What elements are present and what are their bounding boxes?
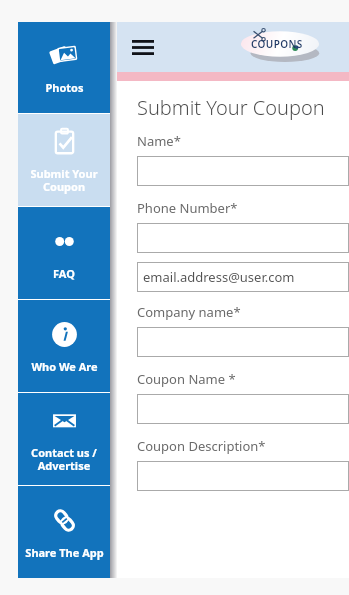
staticText: Photos (45, 80, 84, 95)
button[interactable]: Contact us / Advertise (18, 393, 110, 485)
staticText: Phone Number* (137, 199, 238, 217)
staticText: Coupon Description* (137, 437, 266, 455)
button[interactable] (137, 156, 349, 186)
staticText: Coupon Name * (137, 370, 236, 388)
button[interactable]: Submit Your Coupon (18, 114, 110, 206)
button[interactable]: FAQ (18, 207, 110, 299)
button[interactable]: Who We Are (18, 300, 110, 392)
staticText: Who We Are (31, 359, 98, 374)
button[interactable]: email.address@user.com (137, 262, 349, 292)
button[interactable]: Coupons home (231, 25, 329, 69)
button[interactable]: Share The App (18, 486, 110, 578)
staticText: COUPONS (251, 37, 303, 51)
button[interactable]: Photos (18, 22, 110, 113)
button[interactable] (137, 223, 349, 253)
staticText: Share The App (25, 545, 104, 560)
staticText: Submit Your Coupon (30, 166, 98, 194)
button[interactable] (137, 461, 349, 491)
staticText: FAQ (53, 266, 75, 281)
button[interactable] (137, 327, 349, 357)
staticText: Submit Your Coupon (137, 94, 325, 121)
staticText: Name* (137, 132, 181, 150)
staticText: Contact us / Advertise (31, 445, 97, 473)
staticText: email.address@user.com (143, 268, 295, 286)
staticText: Company name* (137, 303, 241, 321)
button[interactable] (137, 394, 349, 424)
button[interactable]: Open navigation menu (125, 29, 161, 65)
